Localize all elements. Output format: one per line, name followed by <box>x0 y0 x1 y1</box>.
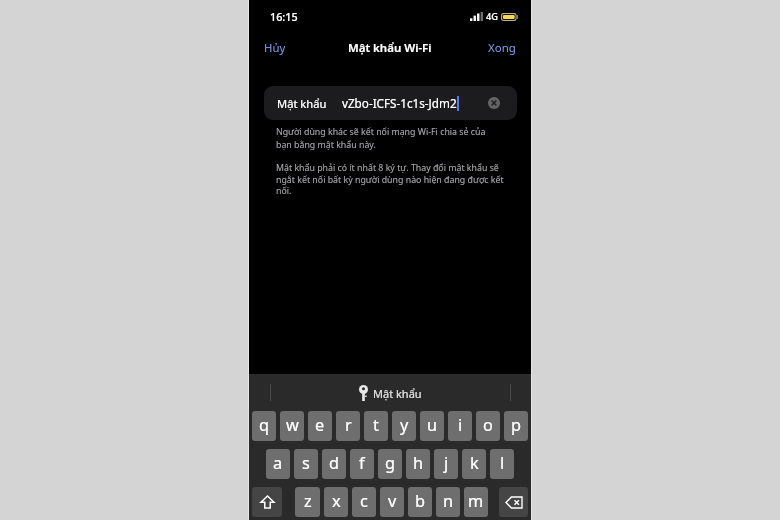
staticText: z <box>304 490 312 512</box>
button[interactable]: i <box>448 411 472 441</box>
staticText: p <box>511 414 522 436</box>
button[interactable]: f <box>350 449 374 479</box>
button[interactable]: Clear text <box>488 97 500 109</box>
button[interactable]: j <box>434 449 458 479</box>
staticText: Mật khẩu phải có ít nhất 8 ký tự. Thay đ… <box>276 162 504 197</box>
staticText: k <box>470 452 479 474</box>
button[interactable]: q <box>252 411 276 441</box>
button[interactable]: u <box>420 411 444 441</box>
staticText: Hủy <box>264 40 286 56</box>
staticText: l <box>500 452 505 474</box>
button[interactable]: n <box>436 487 460 517</box>
button[interactable]: x <box>324 487 348 517</box>
staticText: h <box>413 452 424 474</box>
staticText: t <box>373 414 379 436</box>
button[interactable]: z <box>295 487 320 517</box>
staticText: g <box>385 452 396 474</box>
button[interactable]: Mật khẩu <box>359 385 422 401</box>
staticText: a <box>273 452 283 474</box>
button[interactable]: p <box>504 411 528 441</box>
staticText: s <box>302 452 310 474</box>
staticText: Xong <box>488 40 516 56</box>
staticText: 4G <box>486 10 498 23</box>
staticText: vZbo-ICFS-1c1s-Jdm2 <box>342 95 457 111</box>
staticText: f <box>359 452 365 474</box>
button[interactable]: c <box>352 487 376 517</box>
staticText: Người dùng khác sẽ kết nối mạng Wi-Fi ch… <box>276 126 486 151</box>
staticText: v <box>388 490 397 512</box>
staticText: m <box>468 490 484 512</box>
button[interactable]: g <box>378 449 402 479</box>
button[interactable]: k <box>462 449 486 479</box>
button[interactable]: Backspace <box>499 487 528 517</box>
button[interactable]: v <box>380 487 404 517</box>
button[interactable]: o <box>476 411 500 441</box>
button[interactable]: e <box>308 411 332 441</box>
staticText: u <box>427 414 438 436</box>
staticText: n <box>443 490 454 512</box>
staticText: q <box>259 414 270 436</box>
button[interactable]: l <box>490 449 514 479</box>
button[interactable]: r <box>336 411 360 441</box>
staticText: Mật khẩu <box>373 386 422 401</box>
staticText: y <box>400 414 409 436</box>
staticText: x <box>332 490 341 512</box>
button[interactable]: d <box>322 449 346 479</box>
button[interactable]: Shift <box>252 487 282 517</box>
button[interactable]: b <box>408 487 432 517</box>
staticText: e <box>315 414 325 436</box>
staticText: Mật khẩu Wi-Fi <box>348 40 432 56</box>
staticText: o <box>483 414 493 436</box>
staticText: r <box>345 414 352 436</box>
button[interactable]: a <box>266 449 290 479</box>
button[interactable]: h <box>406 449 430 479</box>
button[interactable]: y <box>392 411 416 441</box>
button[interactable]: m <box>464 487 488 517</box>
button[interactable]: s <box>294 449 318 479</box>
staticText: 16:15 <box>270 9 298 24</box>
staticText: Mật khẩu <box>277 96 327 111</box>
button[interactable]: w <box>280 411 304 441</box>
button[interactable]: Xong <box>476 35 531 61</box>
button[interactable]: t <box>364 411 388 441</box>
staticText: b <box>415 490 426 512</box>
button[interactable]: Mật khẩu <box>264 86 517 120</box>
staticText: w <box>286 414 299 436</box>
button[interactable]: Hủy <box>249 35 298 61</box>
staticText: d <box>329 452 340 474</box>
staticText: i <box>458 414 463 436</box>
staticText: c <box>360 490 368 512</box>
staticText: j <box>444 452 449 474</box>
